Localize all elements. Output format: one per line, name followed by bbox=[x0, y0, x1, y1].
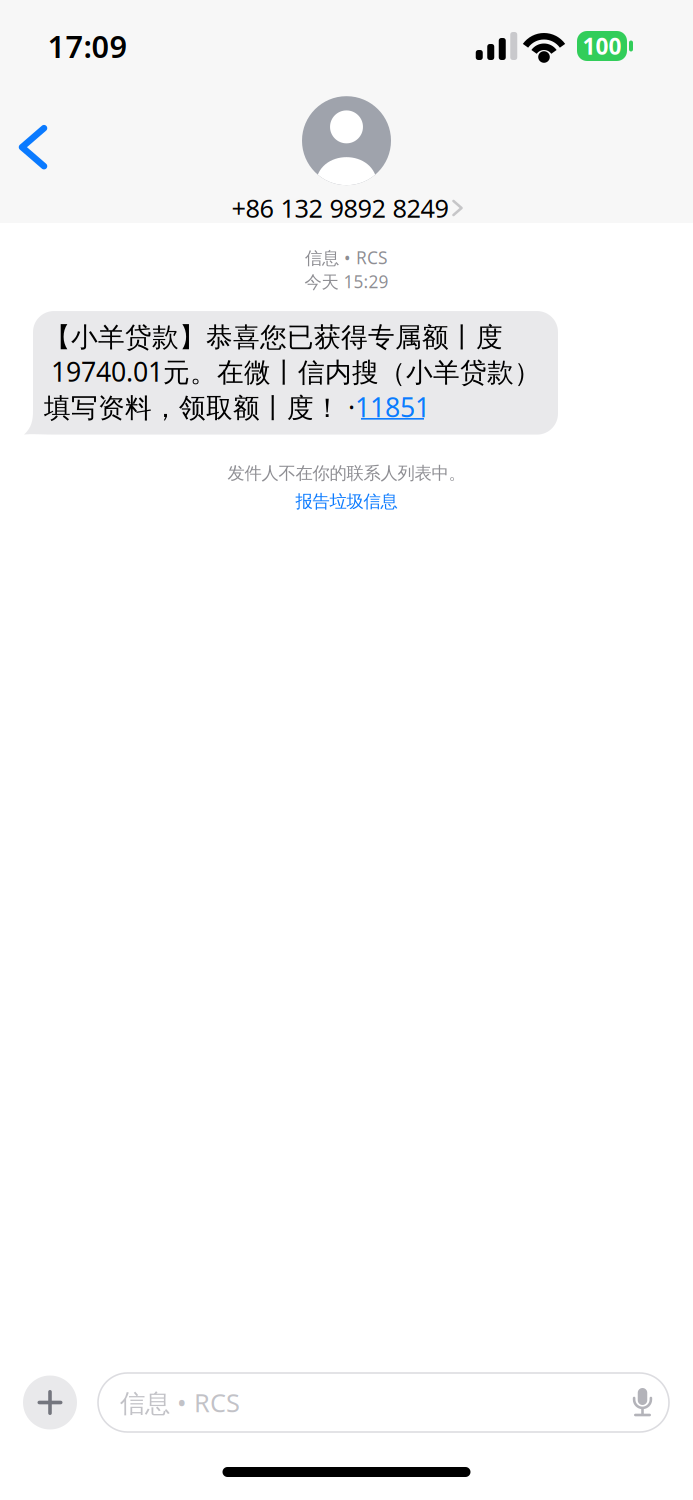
staticText: 信息 • RCS bbox=[120, 1386, 240, 1419]
staticText: 发件人不在你的联系人列表中。 bbox=[227, 463, 465, 484]
staticText: 100 bbox=[582, 31, 621, 61]
button[interactable]: 报告垃圾信息 bbox=[295, 491, 397, 512]
staticText: 【小羊贷款】恭喜您已获得专属额丨度 bbox=[44, 321, 503, 354]
button[interactable]: Back bbox=[0, 108, 70, 186]
staticText: 19740.01元。在微丨信内搜（小羊贷款） bbox=[44, 354, 541, 389]
staticText: 今天 15:29 bbox=[304, 270, 388, 293]
staticText: 信息 • RCS bbox=[305, 246, 388, 269]
staticText: 报告垃圾信息 bbox=[295, 491, 397, 512]
staticText: +86 132 9892 8249 bbox=[231, 191, 448, 225]
staticText: 11851 bbox=[355, 389, 430, 425]
button[interactable]: 信息 • RCS bbox=[98, 1373, 669, 1432]
button[interactable]: Add attachment bbox=[23, 1375, 77, 1429]
staticText: 17:09 bbox=[47, 26, 127, 66]
staticText: 填写资料，领取额丨度！ · bbox=[44, 389, 355, 425]
